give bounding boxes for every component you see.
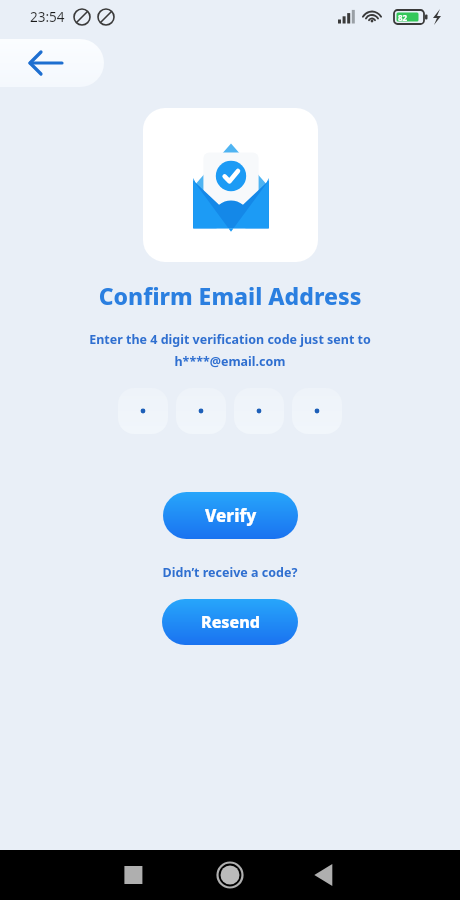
staticText: h****@email.com xyxy=(0,353,460,370)
button[interactable] xyxy=(234,388,284,434)
button[interactable]: Resend xyxy=(162,599,298,645)
staticText: Confirm Email Address xyxy=(0,280,460,311)
staticText: Resend xyxy=(201,611,260,633)
staticText: Verify xyxy=(205,504,257,527)
button[interactable]: Didn’t receive a code? xyxy=(0,564,460,581)
button[interactable] xyxy=(292,388,342,434)
button[interactable] xyxy=(176,388,226,434)
button[interactable] xyxy=(118,388,168,434)
staticText: Enter the 4 digit verification code just… xyxy=(0,331,460,348)
staticText: 23:54 xyxy=(30,8,65,26)
staticText: 82 xyxy=(398,12,408,23)
button[interactable]: Back xyxy=(0,39,104,87)
button[interactable]: Verify xyxy=(163,492,298,539)
